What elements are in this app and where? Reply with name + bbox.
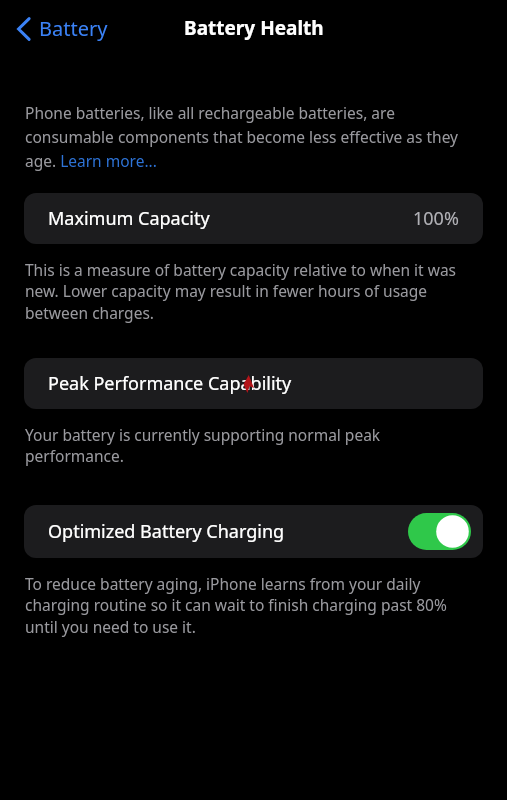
staticText: 100% — [413, 206, 459, 231]
button[interactable]: Phone batteries, like all rechargeable b… — [25, 102, 477, 171]
staticText: Battery — [39, 15, 108, 42]
staticText: This is a measure of battery capacity re… — [25, 259, 477, 324]
button[interactable]: Peak Performance Capability — [24, 358, 483, 409]
staticText: Your battery is currently supporting nor… — [25, 424, 477, 467]
button[interactable]: Optimized Battery Charging — [24, 505, 483, 558]
button[interactable]: Maximum Capacity — [24, 193, 483, 244]
button[interactable]: Battery — [12, 11, 112, 46]
staticText: Battery Health — [184, 15, 324, 41]
staticText: To reduce battery aging, iPhone learns f… — [25, 573, 477, 638]
staticText: Optimized Battery Charging — [48, 519, 285, 544]
staticText: Maximum Capacity — [48, 206, 210, 231]
button[interactable]: Optimized Battery Charging toggle — [408, 513, 471, 550]
staticText: Peak Performance Capability — [48, 371, 292, 396]
